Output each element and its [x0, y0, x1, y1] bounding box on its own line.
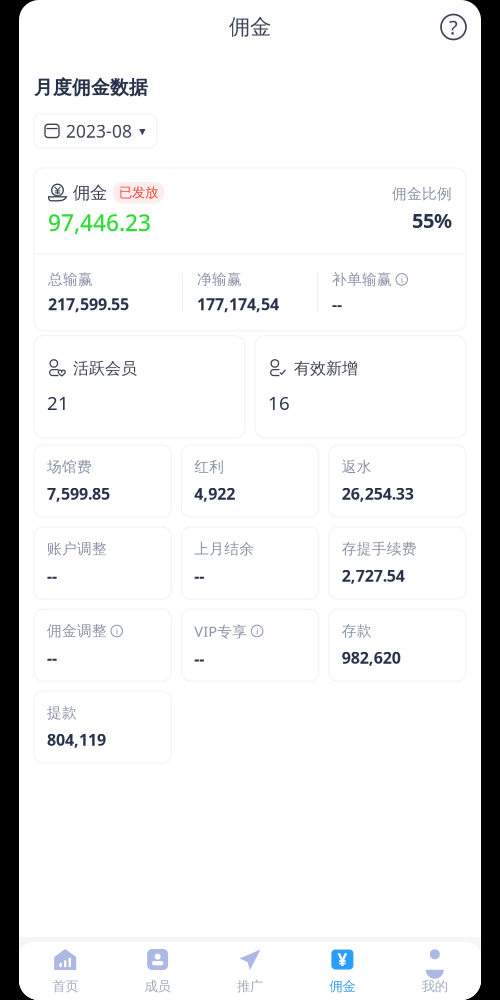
- staticText: 4,922: [194, 483, 235, 504]
- staticText: 净输赢: [197, 270, 242, 288]
- staticText: 月度佣金数据: [34, 76, 148, 99]
- button[interactable]: 有效新增: [255, 336, 466, 438]
- button[interactable]: Help: [441, 14, 466, 39]
- staticText: 804,119: [47, 729, 106, 750]
- staticText: 55%: [412, 207, 452, 233]
- staticText: 217,599.55: [48, 293, 129, 315]
- button[interactable]: VIP专享: [181, 609, 319, 681]
- staticText: 场馆费: [47, 458, 92, 476]
- staticText: i: [116, 625, 118, 637]
- staticText: 红利: [194, 458, 224, 476]
- button[interactable]: 返水: [329, 445, 466, 517]
- button[interactable]: 场馆费: [34, 445, 171, 517]
- staticText: ¥: [337, 948, 347, 971]
- staticText: VIP专享: [194, 621, 247, 641]
- staticText: 佣金: [229, 14, 271, 40]
- staticText: 账户调整: [47, 540, 107, 558]
- button[interactable]: 首页: [19, 945, 111, 997]
- staticText: 佣金比例: [392, 185, 452, 203]
- staticText: 16: [268, 390, 290, 415]
- button[interactable]: 2023-08: [34, 114, 157, 148]
- button[interactable]: 存提手续费: [329, 527, 466, 599]
- staticText: 26,254.33: [342, 483, 414, 504]
- button[interactable]: 存款: [329, 609, 466, 681]
- staticText: 提款: [47, 704, 77, 722]
- button[interactable]: 我的: [389, 945, 481, 997]
- staticText: 2,727.54: [342, 565, 405, 586]
- staticText: 2023-08: [66, 119, 132, 142]
- staticText: 已发放: [119, 184, 158, 201]
- staticText: 首页: [52, 978, 78, 994]
- staticText: 21: [47, 390, 69, 415]
- staticText: --: [332, 293, 342, 315]
- staticText: 177,174,54: [197, 293, 279, 315]
- staticText: 佣金调整: [47, 622, 107, 640]
- staticText: i: [256, 625, 258, 637]
- staticText: 上月结余: [194, 540, 254, 558]
- staticText: 982,620: [342, 647, 401, 668]
- button[interactable]: 红利: [181, 445, 319, 517]
- staticText: ▾: [139, 123, 146, 138]
- staticText: 我的: [422, 978, 448, 994]
- button[interactable]: 账户调整: [34, 527, 171, 599]
- button[interactable]: 活跃会员: [34, 336, 245, 438]
- button[interactable]: ¥: [296, 945, 389, 997]
- staticText: 补单输赢: [332, 270, 392, 288]
- staticText: 有效新增: [294, 359, 358, 378]
- staticText: --: [194, 648, 204, 669]
- button[interactable]: 佣金调整: [34, 609, 171, 681]
- staticText: --: [47, 647, 57, 668]
- button[interactable]: 成员: [111, 945, 204, 997]
- staticText: --: [194, 565, 204, 586]
- staticText: 存款: [342, 622, 372, 640]
- staticText: 7,599.85: [47, 483, 110, 504]
- button[interactable]: 提款: [34, 691, 171, 763]
- staticText: --: [47, 565, 57, 586]
- staticText: 返水: [342, 458, 372, 476]
- staticText: 成员: [145, 978, 171, 994]
- staticText: 总输赢: [48, 270, 93, 288]
- staticText: 活跃会员: [73, 359, 137, 378]
- staticText: ?: [449, 14, 458, 40]
- staticText: 推广: [237, 978, 263, 994]
- staticText: 存提手续费: [342, 540, 417, 558]
- staticText: 佣金: [73, 182, 107, 203]
- staticText: i: [401, 273, 403, 286]
- button[interactable]: 推广: [204, 945, 296, 997]
- staticText: 佣金: [329, 978, 355, 994]
- button[interactable]: 上月结余: [181, 527, 319, 599]
- staticText: 97,446.23: [48, 207, 151, 237]
